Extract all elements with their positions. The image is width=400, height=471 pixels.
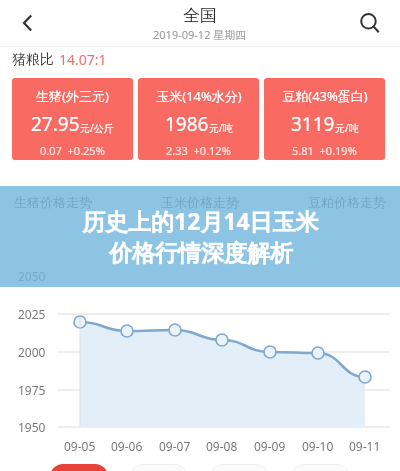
staticText: 09-10 <box>302 438 334 454</box>
staticText: 猪粮比 <box>12 51 54 69</box>
staticText: 2.33 +0.12% <box>166 143 231 158</box>
staticText: 2025 <box>18 306 46 322</box>
staticText: 元/吨 <box>209 121 233 135</box>
staticText: 玉米(14%水分) <box>156 87 242 105</box>
staticText: 生猪(外三元) <box>36 87 109 105</box>
staticText: 玉米价格走势 <box>161 194 239 210</box>
staticText: 09-07 <box>159 438 191 454</box>
staticText: 2050 <box>18 268 46 284</box>
staticText: 09-05 <box>64 438 96 454</box>
staticText: 豆粕(43%蛋白) <box>282 87 368 105</box>
staticText: 2019-09-12 星期四 <box>153 27 247 42</box>
staticText: 历史上的12月14日玉米 <box>82 205 319 236</box>
staticText: 27.95 <box>31 111 80 137</box>
staticText: 1975 <box>18 382 46 398</box>
button[interactable] <box>210 464 269 471</box>
staticText: 1986 <box>165 111 209 137</box>
staticText: 豆粕价格走势 <box>308 194 386 210</box>
button[interactable]: 生猪(外三元) <box>12 78 133 160</box>
staticText: 14.07:1 <box>59 50 107 69</box>
staticText: 1950 <box>18 419 46 435</box>
staticText: 09-11 <box>349 438 381 454</box>
staticText: 元/公斤 <box>80 121 114 135</box>
button[interactable] <box>291 464 350 471</box>
staticText: 全国 <box>183 5 217 26</box>
staticText: 元/吨 <box>335 121 359 135</box>
staticText: 5.81 +0.19% <box>292 143 357 158</box>
staticText: 09-06 <box>111 438 143 454</box>
staticText: 2000 <box>18 344 46 360</box>
staticText: 生猪价格走势 <box>14 194 92 210</box>
button[interactable]: 玉米(14%水分) <box>138 78 259 160</box>
button[interactable]: Search <box>348 1 392 45</box>
button[interactable]: Back <box>6 1 50 45</box>
staticText: 09-08 <box>206 438 238 454</box>
staticText: 09-09 <box>254 438 286 454</box>
staticText: 0.07 +0.25% <box>40 143 105 158</box>
button[interactable]: 豆粕(43%蛋白) <box>264 78 385 160</box>
button[interactable] <box>50 464 108 471</box>
button[interactable] <box>130 464 188 471</box>
staticText: 3119 <box>291 111 335 137</box>
staticText: 价格行情深度解析 <box>109 239 293 268</box>
